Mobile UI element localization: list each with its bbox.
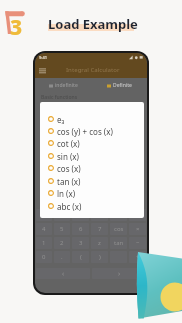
staticText: 3 — [10, 13, 23, 42]
staticText: 9 — [79, 211, 83, 219]
staticText: 7 — [98, 225, 102, 233]
staticText: abc (x) — [57, 201, 82, 212]
staticText: ( — [80, 253, 82, 261]
staticText: cos (y) + cos (x) — [57, 126, 113, 137]
staticText: . — [61, 253, 63, 261]
button[interactable]: cot (x) — [48, 137, 144, 149]
staticText: cos — [114, 225, 124, 233]
staticText: 0 — [42, 253, 46, 261]
staticText: indefinite — [55, 82, 78, 89]
staticText: 4 — [42, 225, 46, 233]
staticText: sin — [114, 211, 123, 219]
staticText: Basic functions — [41, 94, 78, 101]
button[interactable]: indefinite — [35, 78, 91, 92]
staticText: + — [136, 253, 140, 261]
button[interactable]: Menu — [39, 67, 46, 74]
button[interactable]: ÷ — [129, 209, 146, 221]
staticText: 8 — [60, 211, 64, 219]
staticText: Load Example — [48, 15, 138, 33]
button[interactable]: abc (x) — [48, 200, 144, 212]
staticText: ÷ — [136, 211, 140, 219]
staticText: − — [136, 239, 140, 247]
button[interactable]: cos (y) + cos (x) — [48, 125, 144, 137]
button[interactable]: 7 — [91, 223, 108, 235]
staticText: × — [136, 225, 140, 233]
staticText: tan (x) — [57, 176, 81, 187]
staticText: z — [98, 239, 101, 247]
button[interactable]: 8 — [54, 209, 70, 221]
staticText: Definite — [113, 82, 132, 89]
staticText: x — [98, 211, 102, 219]
staticText: 5 — [60, 225, 64, 233]
button[interactable]: e₃ — [48, 113, 144, 125]
staticText: Integral Calculator — [66, 66, 120, 74]
staticText: 7 — [42, 211, 46, 219]
button[interactable]: z — [91, 237, 108, 249]
button[interactable]: ( — [72, 251, 89, 263]
staticText: 2 — [60, 239, 64, 247]
button[interactable]: x — [91, 209, 108, 221]
button[interactable]: 2 — [54, 237, 70, 249]
staticText: 1 — [42, 239, 46, 247]
button[interactable]: cos (x) — [48, 162, 144, 174]
button[interactable]: ln (x) — [48, 187, 144, 199]
staticText: ‹ — [62, 269, 65, 279]
button[interactable]: 7 — [36, 209, 52, 221]
button[interactable]: tan — [110, 237, 127, 249]
staticText: cot (x) — [57, 138, 80, 149]
button[interactable]: › — [92, 268, 146, 279]
button[interactable]: Definite — [91, 78, 147, 92]
button[interactable]: sin — [110, 209, 127, 221]
button[interactable]: 3 — [72, 237, 89, 249]
button[interactable]: 4 — [36, 223, 52, 235]
staticText: › — [118, 269, 121, 279]
staticText: e₃ — [57, 114, 65, 125]
button[interactable]: + — [129, 251, 146, 263]
button[interactable]: 1 — [36, 237, 52, 249]
button[interactable]: 0 — [36, 251, 52, 263]
staticText: ) — [99, 253, 101, 261]
staticText: cos (x) — [57, 163, 81, 174]
button[interactable]: cos — [110, 223, 127, 235]
staticText: sin (x) — [57, 151, 79, 162]
staticText: 6 — [79, 225, 83, 233]
staticText: 3 — [79, 239, 83, 247]
button[interactable]: ) — [91, 251, 108, 263]
button[interactable]: tan (x) — [48, 175, 144, 187]
button[interactable]: 9 — [72, 209, 89, 221]
staticText: tan — [114, 239, 124, 247]
button[interactable]: sin (x) — [48, 150, 144, 162]
button[interactable]: 6 — [72, 223, 89, 235]
staticText: 9:41 — [39, 55, 47, 60]
staticText: ln (x) — [57, 188, 76, 199]
button[interactable]: 5 — [54, 223, 70, 235]
